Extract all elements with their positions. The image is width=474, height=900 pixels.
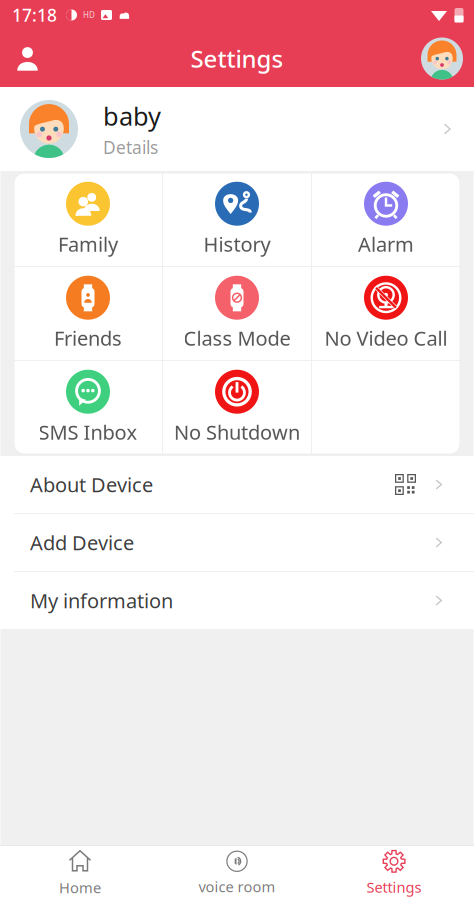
staticText: Family <box>58 231 118 257</box>
button[interactable]: voice room <box>158 845 315 900</box>
staticText: Add Device <box>30 529 134 556</box>
button[interactable]: No Shutdown <box>163 361 311 454</box>
staticText: Class Mode <box>183 325 290 351</box>
button[interactable]: Friends <box>14 267 162 360</box>
staticText: Alarm <box>358 231 414 257</box>
button[interactable]: My information <box>0 572 474 629</box>
staticText: Friends <box>54 325 122 351</box>
staticText: No Video Call <box>324 325 447 351</box>
staticText: Home <box>59 878 101 897</box>
staticText: Settings <box>366 877 421 897</box>
staticText: SMS Inbox <box>38 419 137 445</box>
button[interactable]: Profile <box>410 30 474 87</box>
button[interactable]: No Video Call <box>312 267 460 360</box>
button[interactable]: SMS Inbox <box>14 361 162 454</box>
button[interactable]: Settings <box>315 845 472 900</box>
staticText: 17:18 <box>12 3 57 26</box>
staticText: voice room <box>198 877 275 896</box>
staticText: My information <box>30 587 173 614</box>
button[interactable]: Account <box>0 30 55 87</box>
staticText: Settings <box>190 43 283 74</box>
staticText: No Shutdown <box>174 419 300 445</box>
staticText: HD <box>83 10 95 20</box>
button[interactable]: Family <box>14 173 162 266</box>
staticText: About Device <box>30 471 153 498</box>
button[interactable]: baby <box>0 87 474 171</box>
staticText: Details <box>103 136 158 159</box>
button[interactable]: History <box>163 173 311 266</box>
button[interactable]: Add Device <box>0 514 474 571</box>
button[interactable]: Alarm <box>312 173 460 266</box>
staticText: History <box>203 231 270 257</box>
staticText: baby <box>103 99 161 133</box>
button[interactable]: Home <box>1 845 158 900</box>
button[interactable]: About Device <box>0 456 474 513</box>
button[interactable]: Class Mode <box>163 267 311 360</box>
